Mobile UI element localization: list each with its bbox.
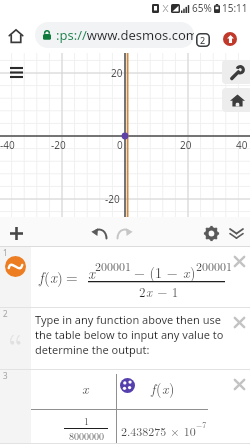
- staticText: 2: [139, 282, 146, 300]
- button[interactable]: Update available: [223, 32, 237, 46]
- button[interactable]: Undo: [88, 222, 110, 244]
- staticText: − 1: [153, 282, 179, 300]
- staticText: f: [151, 378, 156, 398]
- staticText: “: [8, 321, 24, 366]
- staticText: (: [44, 266, 50, 287]
- button[interactable]: Show expression list: [5, 61, 27, 83]
- staticText: =: [66, 266, 78, 287]
- button[interactable]: Home page: [4, 24, 28, 48]
- button[interactable]: Default viewport: [222, 88, 250, 112]
- staticText: −7: [196, 419, 207, 430]
- staticText: -20: [105, 192, 120, 206]
- button[interactable]: Open tabs: 2: [196, 33, 210, 47]
- button[interactable]: 1: [0, 247, 250, 308]
- staticText: ): [57, 266, 63, 287]
- staticText: 1: [3, 247, 8, 258]
- staticText: 2.438275 × 10: [121, 422, 196, 439]
- button[interactable]: Graph settings: [222, 60, 250, 84]
- staticText: :ps://www.desmos.com: [56, 26, 194, 44]
- staticText: 20: [111, 66, 123, 80]
- button[interactable]: Redo: [114, 222, 136, 244]
- staticText: x: [183, 262, 190, 282]
- staticText: − (1 −: [134, 262, 183, 282]
- staticText: 1: [84, 414, 89, 428]
- button[interactable]: Delete expression: [230, 313, 248, 331]
- staticText: x: [88, 262, 95, 283]
- staticText: 200001: [95, 257, 132, 274]
- staticText: 15:11: [222, 1, 248, 15]
- staticText: x: [146, 282, 153, 300]
- staticText: ): [169, 378, 175, 398]
- staticText: 65%: [192, 1, 212, 15]
- staticText: 0: [117, 138, 123, 152]
- staticText: 2: [200, 34, 206, 46]
- staticText: -40: [0, 138, 15, 152]
- staticText: x: [82, 378, 89, 398]
- staticText: x: [50, 266, 57, 287]
- staticText: 200001: [196, 257, 233, 274]
- staticText: f: [39, 266, 44, 287]
- staticText: (: [156, 378, 162, 398]
- staticText: 3: [3, 370, 8, 381]
- staticText: x: [162, 378, 169, 398]
- button[interactable]: Hide expression list: [225, 222, 247, 244]
- staticText: 8000000: [69, 429, 104, 443]
- button[interactable]: Settings: [200, 222, 222, 244]
- staticText: -20: [51, 138, 66, 152]
- button[interactable]: Delete expression: [230, 375, 248, 393]
- staticText: ): [190, 262, 196, 282]
- button[interactable]: Delete expression: [230, 252, 248, 270]
- staticText: Type in any function above then use the …: [35, 312, 234, 357]
- button[interactable]: Add expression: [4, 221, 28, 245]
- button[interactable]: 3: [0, 370, 250, 444]
- button[interactable]: :ps://www.desmos.com: [35, 22, 194, 48]
- staticText: 20: [180, 138, 192, 152]
- button[interactable]: 2: [0, 308, 250, 370]
- staticText: 2: [3, 308, 8, 319]
- staticText: 40: [236, 138, 248, 152]
